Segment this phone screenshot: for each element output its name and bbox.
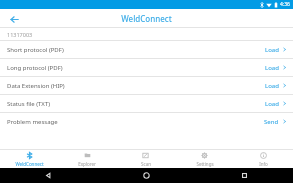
- staticText: Settings: [196, 161, 214, 167]
- staticText: WeldConnect: [15, 161, 44, 167]
- staticText: Load: [265, 64, 279, 72]
- staticText: WeldConnect: [121, 13, 172, 24]
- button[interactable]: Settings: [175, 150, 234, 168]
- staticText: 4:36: [280, 1, 290, 8]
- button[interactable]: WeldConnect: [0, 150, 58, 168]
- staticText: Load: [265, 100, 279, 108]
- button[interactable]: Back: [6, 11, 22, 27]
- staticText: Data Extension (HIP): [7, 82, 265, 90]
- button[interactable]: Long protocol (PDF): [0, 59, 293, 76]
- staticText: Load: [265, 46, 279, 54]
- staticText: Status file (TXT): [7, 100, 265, 108]
- button[interactable]: Scan: [116, 150, 175, 168]
- staticText: Scan: [141, 161, 151, 167]
- button[interactable]: Home: [97, 168, 195, 183]
- button[interactable]: Explorer: [58, 150, 116, 168]
- staticText: Load: [265, 82, 279, 90]
- staticText: Info: [259, 161, 268, 167]
- staticText: Send: [264, 118, 279, 126]
- button[interactable]: Data Extension (HIP): [0, 77, 293, 94]
- button[interactable]: Status file (TXT): [0, 95, 293, 112]
- staticText: Problem message: [7, 118, 264, 126]
- button[interactable]: Recent apps: [195, 168, 293, 183]
- staticText: 11317003: [7, 31, 33, 38]
- button[interactable]: Back: [0, 168, 97, 183]
- staticText: Explorer: [78, 161, 96, 167]
- staticText: Short protocol (PDF): [7, 46, 265, 54]
- staticText: Long protocol (PDF): [7, 64, 265, 72]
- button[interactable]: Problem message: [0, 113, 293, 130]
- button[interactable]: Short protocol (PDF): [0, 41, 293, 58]
- button[interactable]: Info: [234, 150, 293, 168]
